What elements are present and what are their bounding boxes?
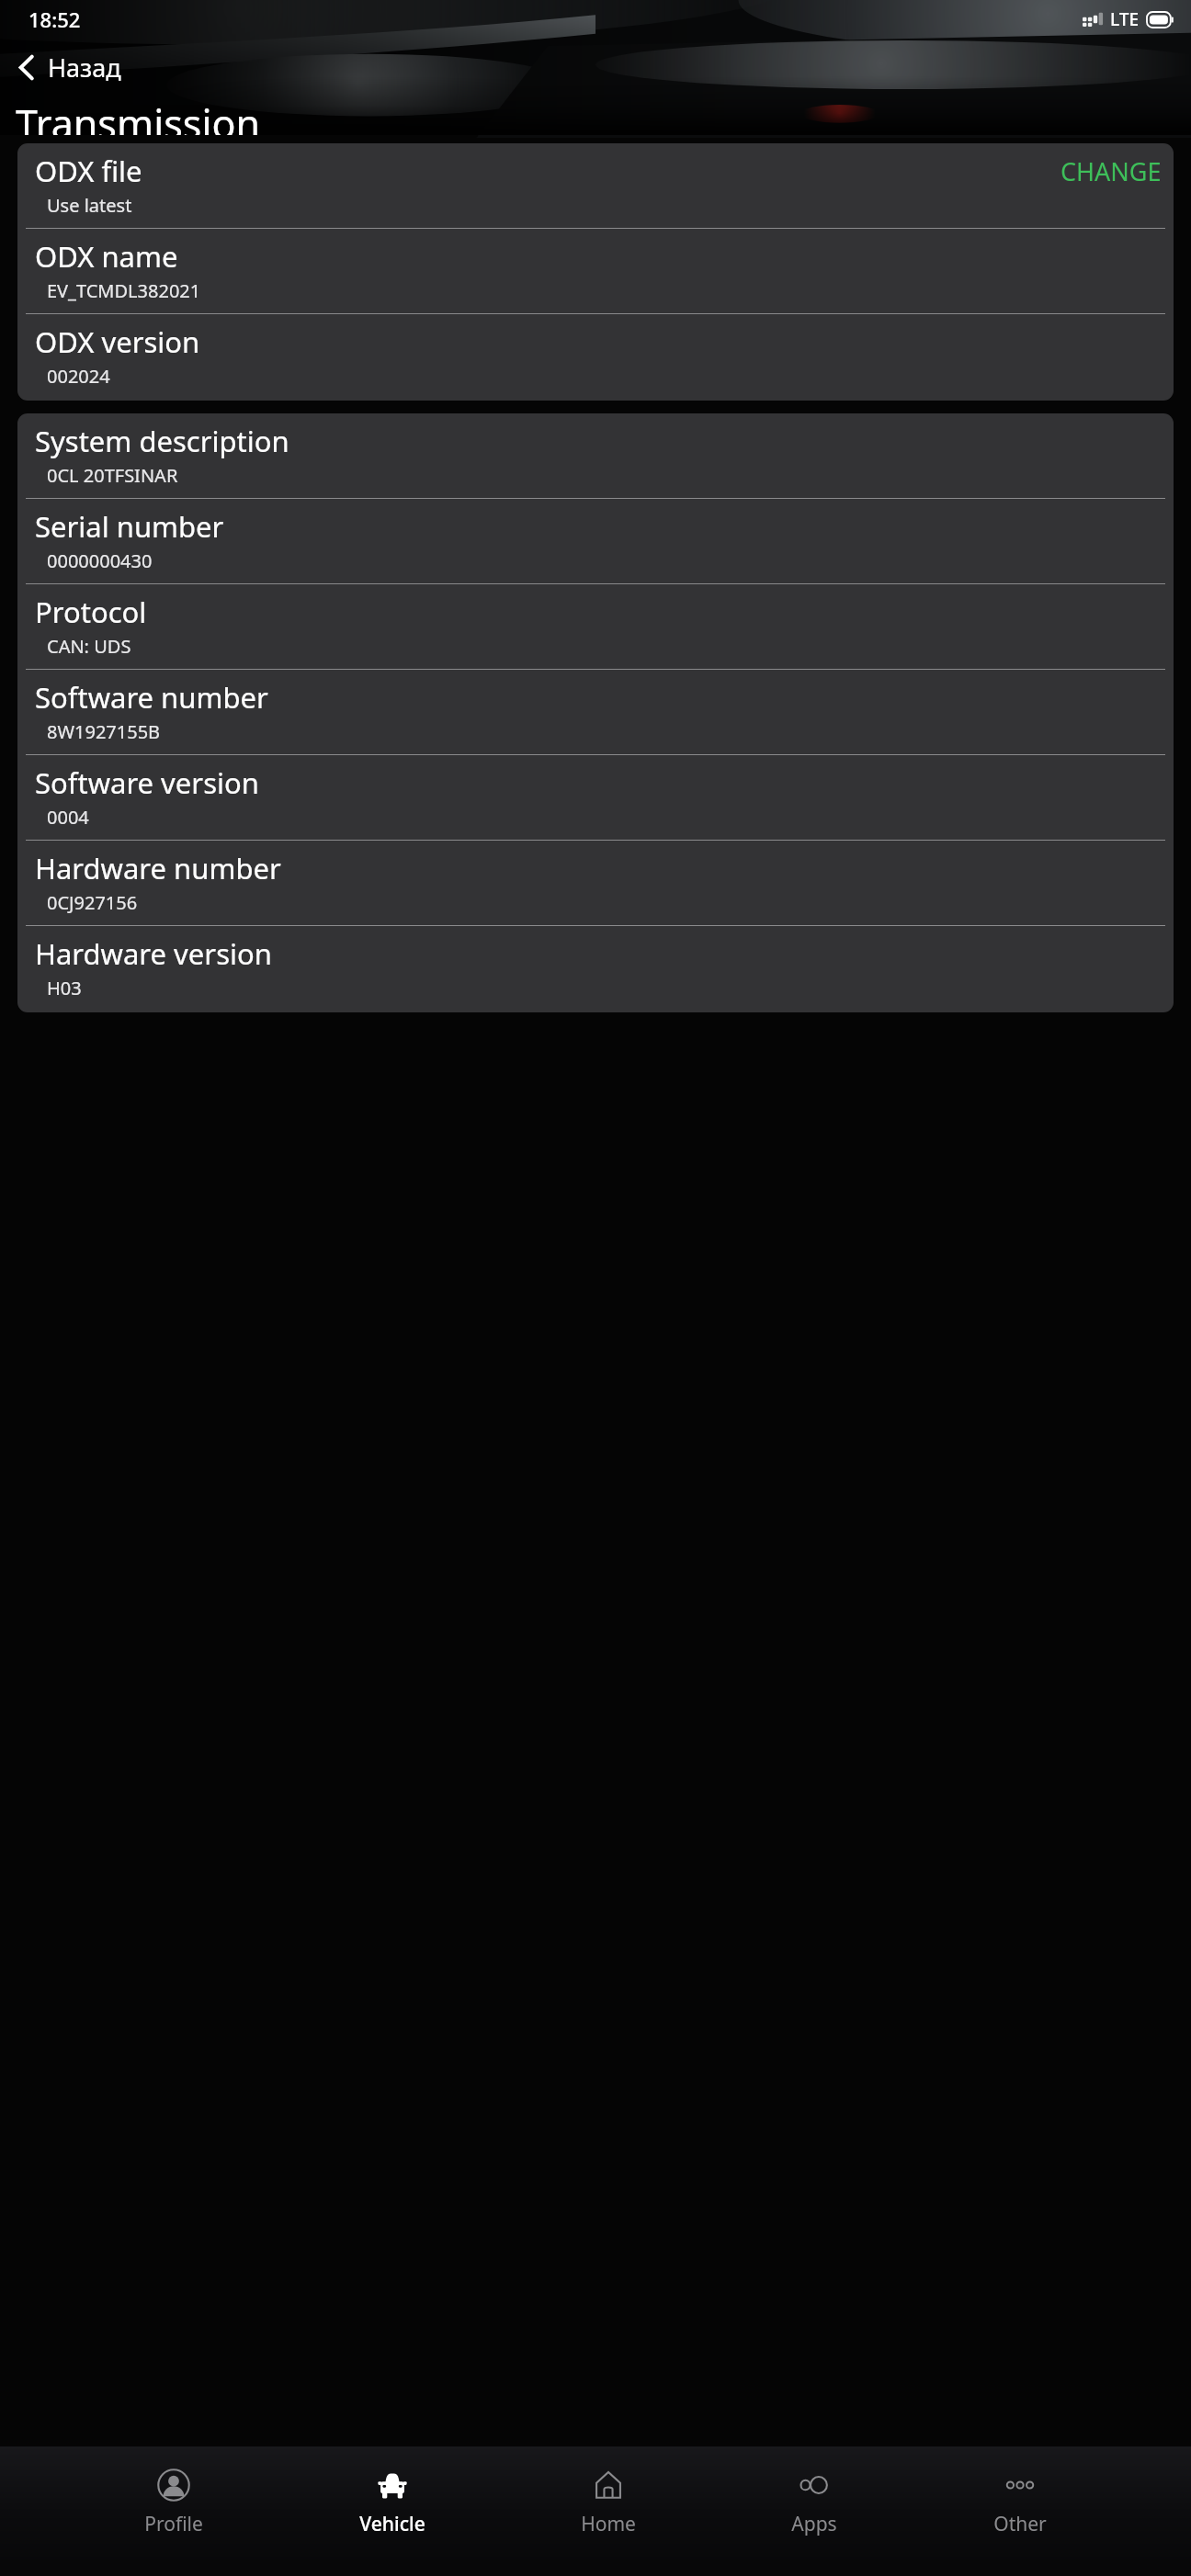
button[interactable]: Profile xyxy=(133,2466,214,2539)
button[interactable]: Vehicle xyxy=(348,2466,437,2539)
button[interactable]: Software version xyxy=(17,755,1174,841)
staticText: 0CJ927156 xyxy=(47,890,138,915)
staticText: Protocol xyxy=(35,593,1162,631)
staticText: Other xyxy=(993,2511,1047,2537)
staticText: CAN: UDS xyxy=(47,634,131,659)
button[interactable]: System description xyxy=(17,413,1174,499)
staticText: Hardware number xyxy=(35,849,1162,887)
button[interactable]: Back xyxy=(0,46,145,89)
button[interactable]: Software number xyxy=(17,670,1174,755)
staticText: 002024 xyxy=(47,364,110,389)
staticText: 0CL 20TFSINAR xyxy=(47,463,178,488)
staticText: Use latest xyxy=(47,193,132,218)
button[interactable]: ODX version xyxy=(17,314,1174,401)
button[interactable]: Hardware version xyxy=(17,926,1174,1012)
button[interactable]: Hardware number xyxy=(17,841,1174,926)
staticText: Hardware version xyxy=(35,934,1162,973)
staticText: ODX file xyxy=(35,152,1061,190)
staticText: 18:52 xyxy=(28,6,81,33)
staticText: Software number xyxy=(35,678,1162,717)
staticText: System description xyxy=(35,422,1162,460)
staticText: ODX version xyxy=(35,322,1162,361)
button[interactable]: Serial number xyxy=(17,499,1174,584)
button[interactable]: Home xyxy=(570,2466,647,2539)
button[interactable]: ODX file xyxy=(17,143,1174,229)
button[interactable]: Protocol xyxy=(17,584,1174,670)
button[interactable]: Other xyxy=(982,2466,1058,2539)
staticText: CHANGE xyxy=(1061,154,1162,188)
staticText: Profile xyxy=(144,2511,203,2537)
staticText: LTE xyxy=(1110,7,1140,31)
staticText: 8W1927155B xyxy=(47,719,161,744)
staticText: ODX name xyxy=(35,237,1162,276)
staticText: Назад xyxy=(48,51,121,85)
staticText: Software version xyxy=(35,763,1162,802)
staticText: Serial number xyxy=(35,507,1162,546)
staticText: Vehicle xyxy=(359,2511,425,2537)
staticText: Apps xyxy=(791,2511,837,2537)
staticText: EV_TCMDL382021 xyxy=(47,278,201,303)
staticText: H03 xyxy=(47,976,82,1000)
staticText: 0004 xyxy=(47,805,89,830)
staticText: Home xyxy=(581,2511,636,2537)
staticText: 0000000430 xyxy=(47,548,153,573)
staticText: Transmission xyxy=(16,96,261,135)
button[interactable]: Apps xyxy=(780,2466,848,2539)
button[interactable]: ODX name xyxy=(17,229,1174,314)
